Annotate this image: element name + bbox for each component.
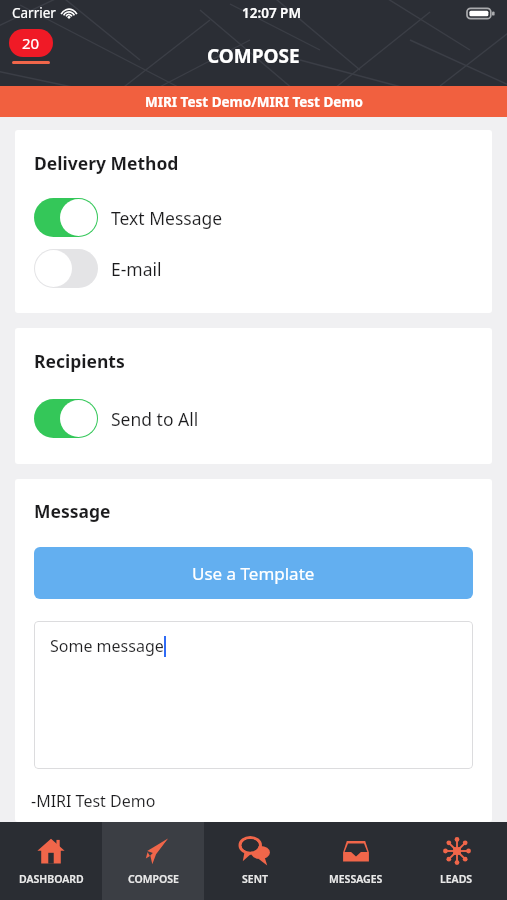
- staticText: Send to All: [111, 407, 199, 431]
- staticText: 20: [22, 33, 40, 53]
- staticText: LEADS: [440, 872, 473, 886]
- button[interactable]: MIRI Test Demo/MIRI Test Demo: [0, 86, 507, 117]
- button[interactable]: SENT: [204, 822, 305, 900]
- staticText: 12:07 PM: [242, 4, 301, 22]
- staticText: COMPOSE: [128, 872, 179, 886]
- staticText: Message: [34, 499, 111, 523]
- staticText: Text Message: [111, 206, 223, 230]
- button[interactable]: Send to All: [34, 399, 473, 438]
- staticText: MIRI Test Demo/MIRI Test Demo: [145, 93, 363, 111]
- button[interactable]: E-mail: [34, 249, 473, 288]
- staticText: DASHBOARD: [19, 872, 84, 886]
- button[interactable]: MESSAGES: [305, 822, 406, 900]
- staticText: Use a Template: [192, 562, 315, 585]
- button[interactable]: Use a Template: [34, 547, 473, 599]
- staticText: -MIRI Test Demo: [31, 790, 156, 812]
- staticText: COMPOSE: [207, 43, 300, 69]
- button[interactable]: LEADS: [406, 822, 507, 900]
- button[interactable]: Text Message: [34, 198, 473, 237]
- button[interactable]: COMPOSE: [102, 822, 204, 900]
- button[interactable]: Notifications, 20 unread: [9, 29, 53, 64]
- button[interactable]: DASHBOARD: [0, 822, 102, 900]
- staticText: E-mail: [111, 257, 162, 281]
- staticText: Carrier: [12, 4, 56, 22]
- staticText: Delivery Method: [34, 151, 179, 175]
- staticText: MESSAGES: [329, 872, 383, 886]
- staticText: SENT: [242, 872, 268, 886]
- staticText: Recipients: [34, 349, 125, 373]
- staticText: Some message: [50, 635, 164, 657]
- button[interactable]: Some message: [34, 621, 473, 769]
